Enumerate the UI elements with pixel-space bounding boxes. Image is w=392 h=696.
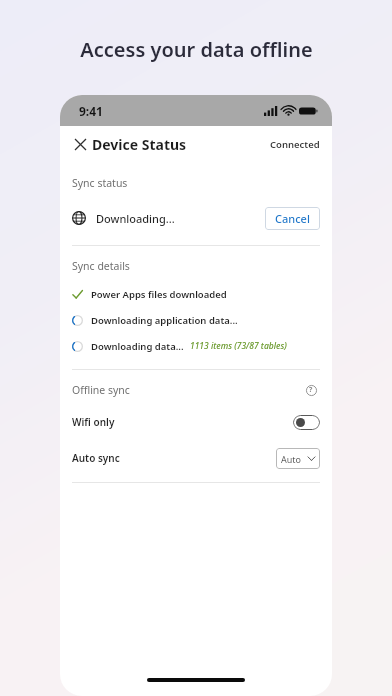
staticText: Auto sync xyxy=(72,451,120,465)
button[interactable]: Auto xyxy=(276,448,320,469)
button[interactable]: Wifi only toggle xyxy=(293,415,320,430)
staticText: 9:41 xyxy=(79,103,103,119)
staticText: Sync details xyxy=(72,259,130,273)
staticText: Cancel xyxy=(275,211,310,226)
staticText: Downloading data... xyxy=(91,340,184,353)
staticText: 1113 items (73/87 tables) xyxy=(190,340,287,352)
staticText: Sync status xyxy=(72,176,128,190)
staticText: Offline sync xyxy=(72,383,130,397)
staticText: Power Apps files downloaded xyxy=(91,288,227,301)
staticText: Connected xyxy=(270,138,320,151)
button[interactable]: Close xyxy=(66,130,94,158)
button[interactable]: Auto sync xyxy=(60,443,332,473)
staticText: Auto xyxy=(281,453,302,465)
staticText: Device Status xyxy=(92,135,187,154)
staticText: Wifi only xyxy=(72,415,115,429)
button[interactable]: Help xyxy=(302,381,320,399)
staticText: Access your data offline xyxy=(80,36,313,63)
staticText: Downloading application data... xyxy=(91,314,238,327)
button[interactable]: Cancel xyxy=(265,207,320,230)
button[interactable]: Wifi only xyxy=(60,409,332,435)
staticText: ? xyxy=(309,385,313,395)
staticText: Downloading... xyxy=(96,211,175,226)
